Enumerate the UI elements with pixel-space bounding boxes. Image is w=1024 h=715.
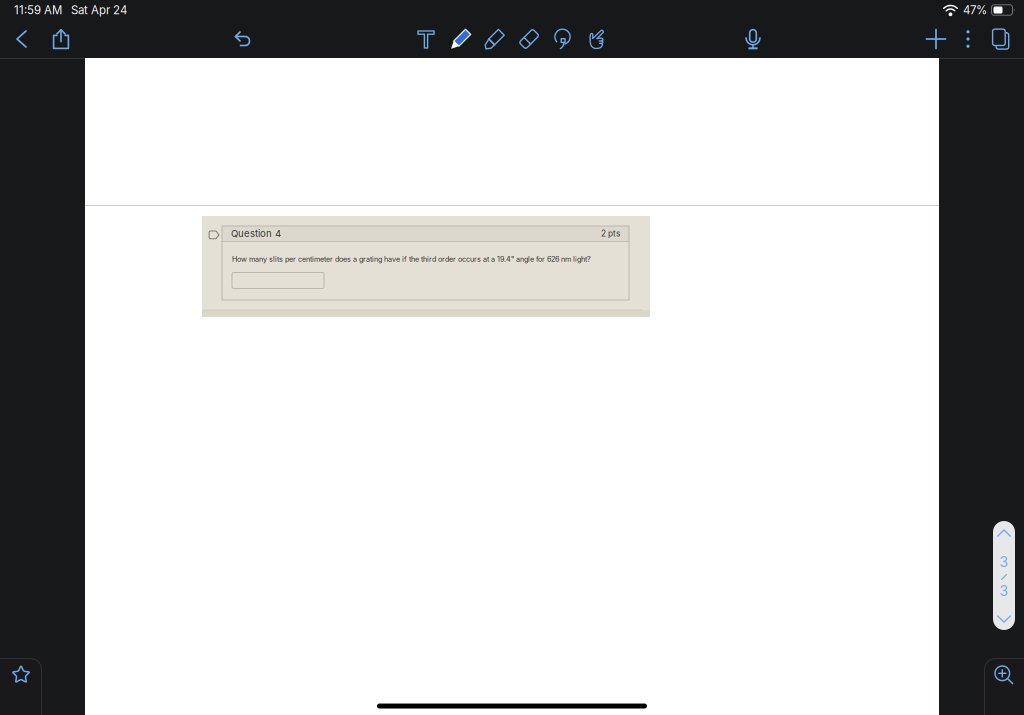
- button[interactable]: Favourite: [4, 658, 38, 692]
- button[interactable]: Next page: [993, 609, 1015, 629]
- button[interactable]: Text tool: [409, 20, 443, 58]
- staticText: 3: [999, 553, 1008, 570]
- button[interactable]: Pages: [984, 20, 1018, 58]
- button[interactable]: Undo: [226, 20, 260, 58]
- button[interactable]: Lasso tool: [546, 20, 580, 58]
- button[interactable]: Zoom in: [987, 658, 1021, 692]
- button[interactable]: Hand tool: [579, 20, 613, 58]
- staticText: 3: [999, 582, 1008, 599]
- staticText: Question 4: [231, 228, 281, 239]
- button[interactable]: Add: [919, 20, 953, 58]
- button[interactable]: Highlighter tool: [478, 20, 512, 58]
- button[interactable]: More: [951, 20, 985, 58]
- staticText: How many slits per centimeter does a gra…: [232, 255, 591, 263]
- button[interactable]: Previous page: [993, 523, 1015, 543]
- staticText: 47%: [963, 3, 987, 17]
- staticText: 11:59 AM: [14, 3, 62, 17]
- button[interactable]: Pen tool: [444, 20, 478, 58]
- staticText: Sat Apr 24: [71, 3, 127, 17]
- button[interactable]: Share: [44, 20, 78, 58]
- button[interactable]: Record audio: [736, 20, 770, 58]
- staticText: 2 pts: [601, 228, 620, 238]
- button[interactable]: Eraser tool: [512, 20, 546, 58]
- button[interactable]: Back: [5, 20, 39, 58]
